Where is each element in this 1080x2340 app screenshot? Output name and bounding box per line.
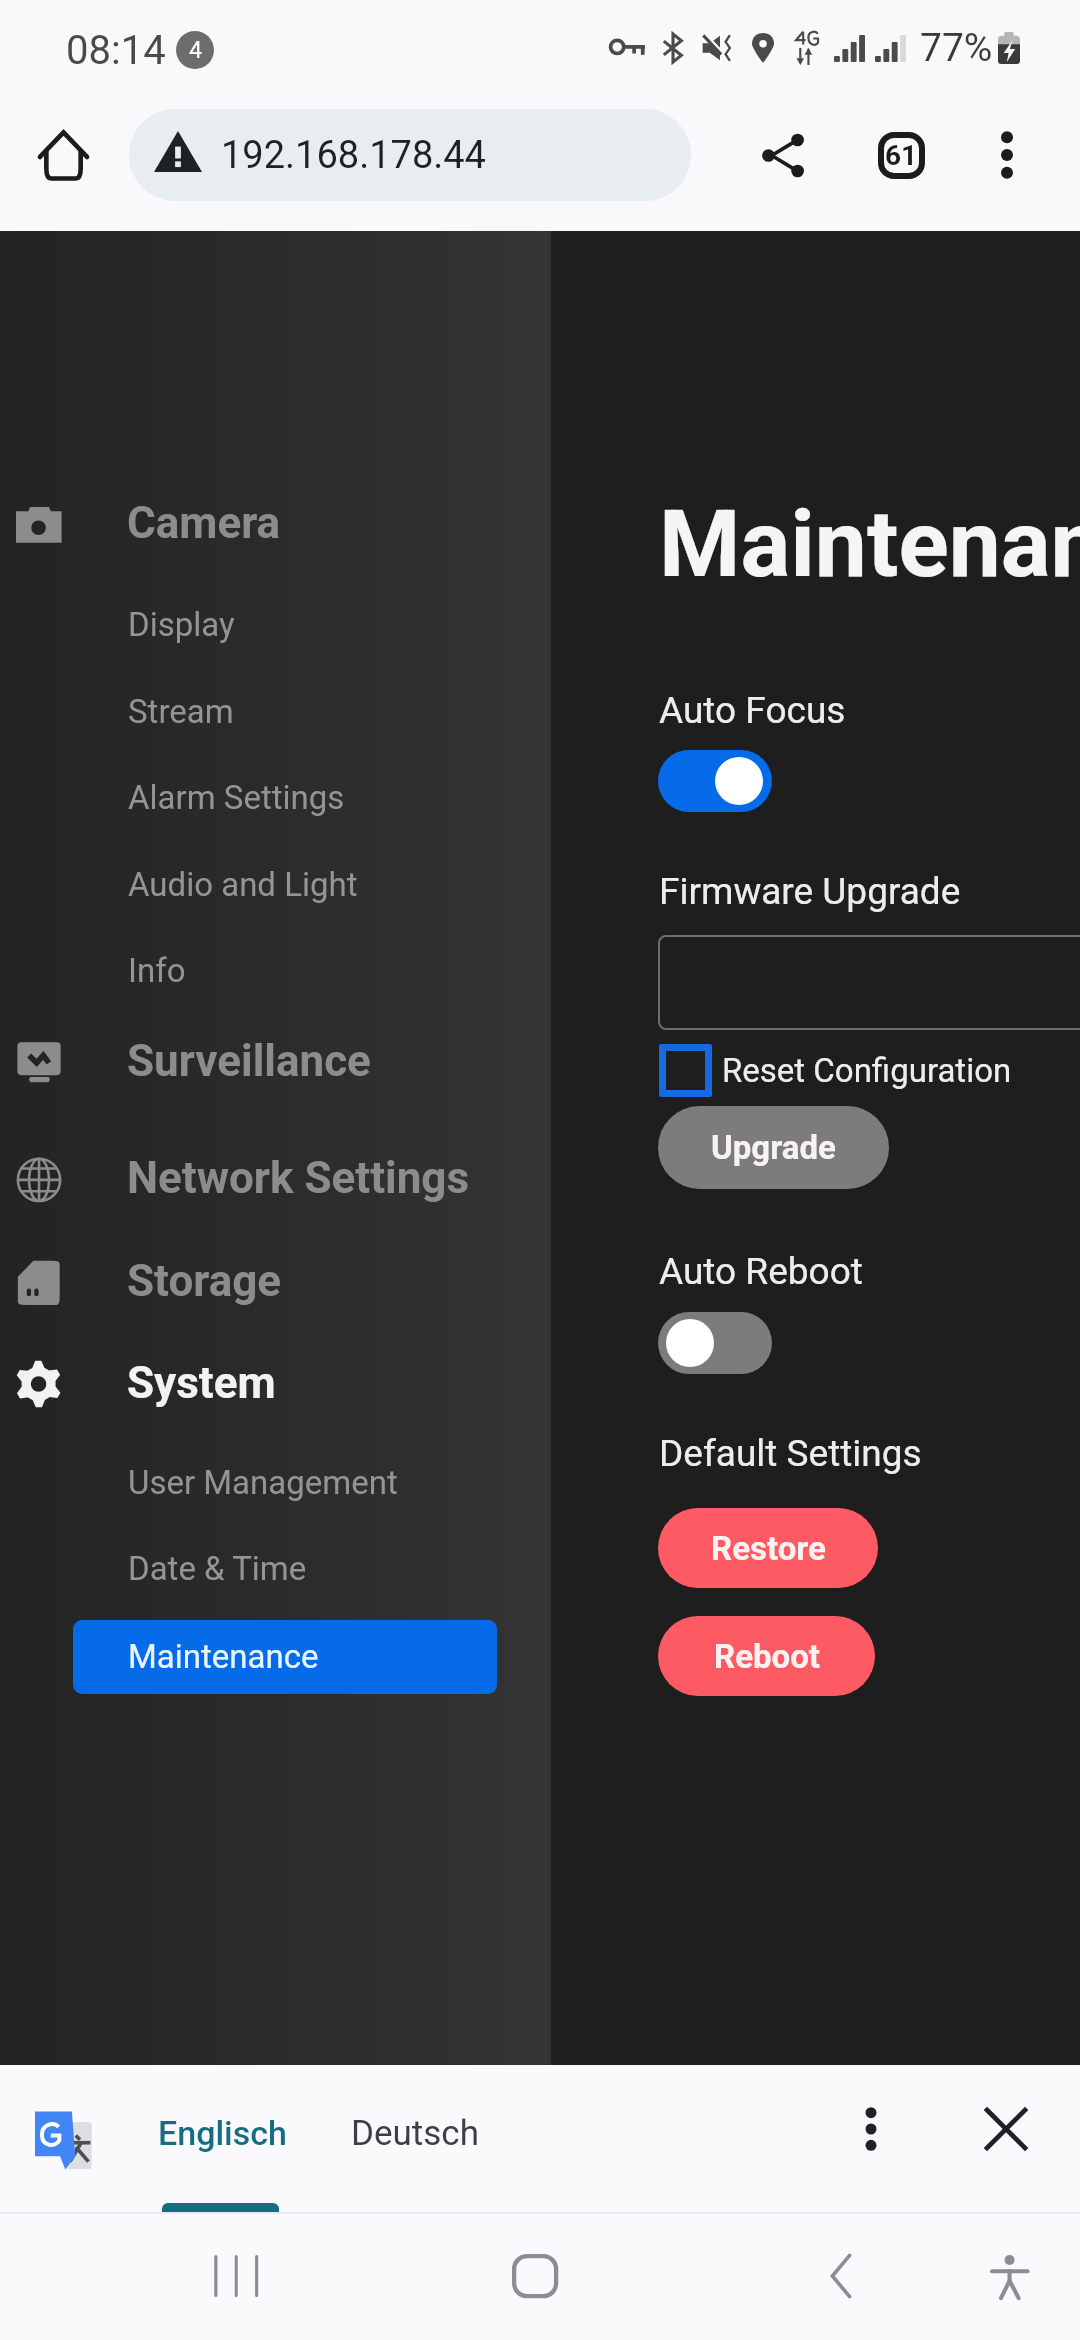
button[interactable]: Switch on <box>658 750 772 812</box>
button[interactable]: Upgrade <box>658 1106 889 1189</box>
button[interactable]: Reset Configuration <box>657 1040 1012 1100</box>
button[interactable]: Back <box>793 2228 889 2324</box>
staticText: Alarm Settings <box>128 778 345 817</box>
button[interactable]: Alarm Settings <box>0 767 551 827</box>
staticText: Surveillance <box>127 1035 371 1087</box>
button[interactable]: Date & Time <box>0 1538 551 1598</box>
button[interactable]: Home <box>487 2228 583 2324</box>
staticText: Stream <box>128 692 234 731</box>
button[interactable]: System <box>0 1346 551 1420</box>
staticText: Info <box>128 951 186 990</box>
staticText: Deutsch <box>351 2113 479 2154</box>
staticText: 08:14 <box>66 27 166 74</box>
button[interactable]: Deutsch <box>323 2073 507 2193</box>
button[interactable]: User Management <box>0 1452 551 1512</box>
staticText: Englisch <box>158 2113 287 2153</box>
button[interactable]: Firmware file <box>658 935 1080 1030</box>
staticText: Storage <box>127 1255 282 1307</box>
button[interactable]: Switch off <box>658 1312 772 1374</box>
staticText: Audio and Light <box>128 865 358 904</box>
staticText: Default Settings <box>659 1432 922 1475</box>
staticText: Auto Focus <box>659 689 846 732</box>
staticText: Reboot <box>714 1637 820 1676</box>
button[interactable]: Storage <box>0 1244 551 1318</box>
staticText: Reset Configuration <box>722 1051 1012 1090</box>
button[interactable]: Share <box>738 110 828 200</box>
button[interactable]: Home <box>18 110 108 200</box>
button[interactable]: Audio and Light <box>0 854 551 914</box>
staticText: Date & Time <box>128 1549 307 1588</box>
staticText: Restore <box>711 1529 826 1568</box>
staticText: Camera <box>127 497 281 549</box>
button[interactable]: Accessibility <box>963 2228 1059 2324</box>
staticText: Maintenance <box>128 1637 319 1676</box>
button[interactable]: More options <box>962 110 1052 200</box>
staticText: Firmware Upgrade <box>659 870 961 913</box>
button[interactable]: Recents <box>188 2228 284 2324</box>
staticText: 77% <box>920 25 993 71</box>
staticText: Display <box>128 605 235 644</box>
staticText: 4 <box>189 37 202 64</box>
staticText: 192.168.178.44 <box>221 133 486 178</box>
button[interactable]: Englisch <box>130 2073 315 2193</box>
button[interactable]: Translate options <box>827 2085 915 2173</box>
button[interactable]: Close <box>962 2085 1050 2173</box>
staticText: 61 <box>885 139 918 172</box>
staticText: User Management <box>128 1463 398 1502</box>
button[interactable]: Reboot <box>658 1616 875 1696</box>
button[interactable]: Info <box>0 940 551 1000</box>
button[interactable]: 192.168.178.44 <box>129 109 691 201</box>
staticText: Network Settings <box>127 1152 470 1204</box>
button[interactable]: Restore <box>658 1508 878 1588</box>
button[interactable]: Display <box>0 594 551 654</box>
staticText: Auto Reboot <box>659 1250 863 1293</box>
staticText: Maintenance <box>659 490 1080 599</box>
staticText: System <box>127 1357 276 1409</box>
button[interactable]: Stream <box>0 681 551 741</box>
button[interactable]: Surveillance <box>0 1024 551 1098</box>
button[interactable]: Tabs, 61 open <box>856 110 946 200</box>
button[interactable]: Camera <box>0 486 551 560</box>
button[interactable]: Network Settings <box>0 1141 551 1215</box>
button[interactable]: Maintenance <box>73 1620 497 1694</box>
staticText: Upgrade <box>711 1128 836 1167</box>
